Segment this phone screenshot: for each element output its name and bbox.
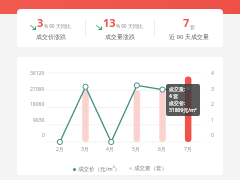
staticText: 90 天同比	[49, 23, 72, 30]
staticText: 13	[103, 15, 116, 30]
button[interactable]: 成交量:	[169, 86, 197, 114]
staticText: 3月	[81, 146, 89, 153]
staticText: 0	[42, 132, 45, 139]
staticText: 1	[211, 117, 214, 124]
staticText: 36120	[30, 70, 45, 77]
staticText: 成交价:	[169, 100, 186, 107]
staticText: 套	[190, 24, 195, 30]
staticText: 27090	[30, 86, 45, 93]
button[interactable]: 13	[86, 9, 154, 47]
staticText: %	[116, 23, 121, 30]
button[interactable]: 7	[155, 9, 223, 47]
staticText: 成交量涨跌	[105, 33, 135, 41]
staticText: 9030	[33, 117, 45, 124]
staticText: 18060	[30, 101, 45, 108]
button[interactable]: 36120	[17, 57, 223, 175]
staticText: 7月	[184, 146, 192, 153]
staticText: 31809元/m²	[169, 107, 197, 114]
staticText: 4 套	[169, 93, 179, 100]
staticText: 5月	[132, 146, 140, 153]
staticText: 4月	[106, 146, 114, 153]
staticText: 成交量（套）	[134, 165, 167, 172]
staticText: 2月	[56, 146, 64, 153]
staticText: 3	[37, 15, 44, 30]
staticText: 成交量:	[169, 86, 186, 93]
button[interactable]: 成交价（元/m²）	[73, 165, 121, 173]
staticText: %	[44, 23, 49, 30]
staticText: 成交价涨跌	[36, 33, 66, 41]
staticText: 0	[211, 132, 214, 139]
staticText: 近 90 天成交量	[169, 33, 209, 41]
button[interactable]: 3	[17, 9, 85, 47]
staticText: 2	[211, 101, 214, 108]
staticText: 7	[183, 15, 190, 30]
button[interactable]: 成交量（套）	[129, 165, 167, 172]
staticText: 成交价（元/m²）	[78, 165, 121, 173]
staticText: 90 天同比	[121, 23, 144, 30]
button[interactable]: 3	[17, 9, 223, 47]
staticText: 3	[211, 86, 214, 93]
staticText: 6月	[158, 146, 166, 153]
staticText: 4	[211, 70, 214, 77]
